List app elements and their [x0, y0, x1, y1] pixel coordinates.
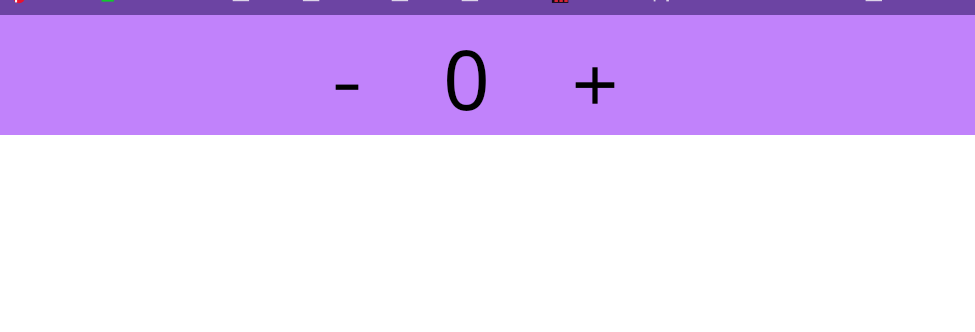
button[interactable]: Increment counter	[555, 45, 635, 125]
button[interactable]: Decrement counter	[307, 47, 387, 127]
staticText: 0	[443, 22, 490, 134]
